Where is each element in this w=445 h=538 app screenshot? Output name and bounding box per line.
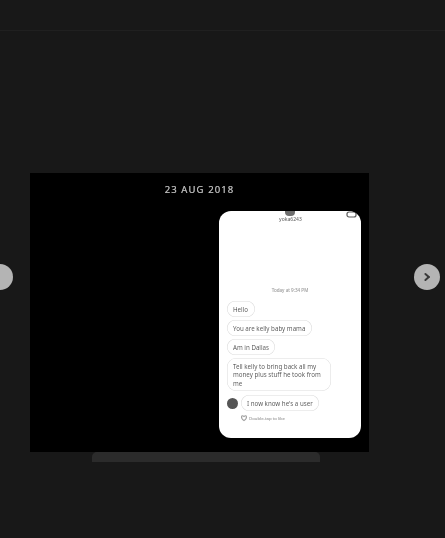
- button[interactable]: Hello: [227, 301, 255, 317]
- button[interactable]: I now know he's a user: [241, 395, 319, 411]
- button[interactable]: You are kelly baby mama: [227, 320, 312, 336]
- staticText: You are kelly baby mama: [233, 324, 306, 332]
- button[interactable]: Am in Dallas: [227, 339, 275, 355]
- staticText: Double-tap to like: [249, 415, 285, 421]
- button[interactable]: Tell kelly to bring back all my money pl…: [227, 358, 331, 391]
- button[interactable]: Previous: [0, 264, 13, 290]
- staticText: I now know he's a user: [247, 399, 313, 407]
- button[interactable]: Next: [414, 264, 440, 290]
- staticText: Am in Dallas: [233, 343, 269, 351]
- staticText: yoka6243: [279, 216, 302, 223]
- staticText: Today at 9:34 PM: [219, 287, 361, 293]
- staticText: Tell kelly to bring back all my money pl…: [233, 362, 325, 387]
- staticText: Hello: [233, 305, 249, 313]
- staticText: 23 AUG 2018: [30, 183, 369, 196]
